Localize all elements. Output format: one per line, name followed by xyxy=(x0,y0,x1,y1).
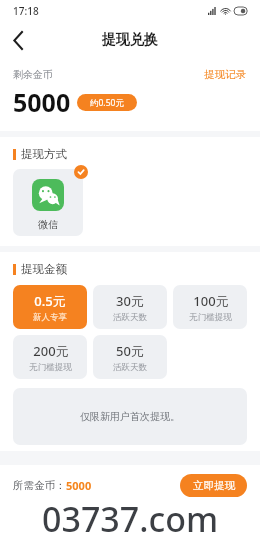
button[interactable]: 200元 xyxy=(13,335,87,379)
staticText: 提现记录 xyxy=(204,68,246,81)
staticText: 活跃天数 xyxy=(113,312,147,323)
staticText: 100元 xyxy=(193,292,229,310)
button[interactable]: 立即提现 xyxy=(180,474,247,497)
staticText: 提现金额 xyxy=(21,262,67,276)
staticText: 活跃天数 xyxy=(113,362,147,373)
button[interactable]: 提现记录 xyxy=(203,67,247,82)
button[interactable]: 0.5元 xyxy=(13,285,87,329)
staticText: 200元 xyxy=(33,342,69,360)
staticText: 30元 xyxy=(116,292,144,310)
staticText: 微信 xyxy=(38,218,58,231)
button[interactable]: 100元 xyxy=(173,285,247,329)
staticText: 提现兑换 xyxy=(102,31,158,49)
staticText: 无门槛提现 xyxy=(189,312,232,323)
button[interactable]: Back xyxy=(0,22,36,58)
staticText: 5000 xyxy=(13,85,71,119)
button[interactable]: 约0.50元 xyxy=(77,94,137,111)
staticText: 17:18 xyxy=(13,4,39,18)
staticText: 约0.50元 xyxy=(90,97,124,109)
staticText: 所需金币： xyxy=(13,479,66,492)
staticText: 50元 xyxy=(116,342,144,360)
staticText: 剩余金币 xyxy=(13,68,53,81)
staticText: 仅限新用户首次提现。 xyxy=(80,410,180,423)
staticText: 0.5元 xyxy=(34,292,66,310)
button[interactable]: 50元 xyxy=(93,335,167,379)
staticText: 提现方式 xyxy=(21,147,67,161)
staticText: 立即提现 xyxy=(193,479,235,492)
staticText: 03737.com xyxy=(42,496,219,542)
staticText: 新人专享 xyxy=(33,312,67,323)
staticText: 无门槛提现 xyxy=(29,362,72,373)
button[interactable]: 30元 xyxy=(93,285,167,329)
staticText: 5000 xyxy=(66,478,92,493)
button[interactable]: 微信 xyxy=(13,169,83,236)
